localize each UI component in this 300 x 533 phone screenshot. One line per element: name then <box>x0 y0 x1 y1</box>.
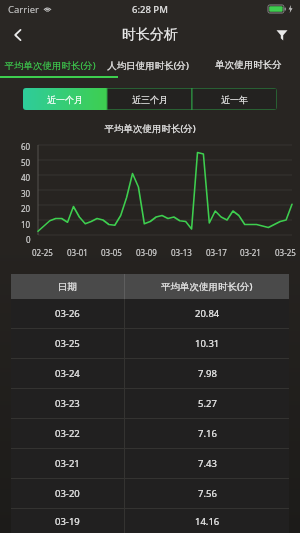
staticText: 03-21 <box>55 457 80 470</box>
staticText: 03-25 <box>55 337 80 350</box>
staticText: 平均单次使用时长(分) <box>161 280 253 293</box>
button[interactable]: 03-25 <box>11 329 289 358</box>
staticText: 03-20 <box>55 487 80 500</box>
staticText: 03-19 <box>55 515 80 528</box>
staticText: 7.43 <box>198 457 217 470</box>
button[interactable]: 03-20 <box>11 479 289 508</box>
staticText: 人均日使用时长(分) <box>107 59 189 72</box>
staticText: 近一个月 <box>47 94 83 105</box>
button[interactable]: 03-19 <box>11 509 289 533</box>
staticText: 30 <box>21 188 31 199</box>
staticText: 0 <box>26 234 31 245</box>
button[interactable]: Back <box>0 18 36 52</box>
button[interactable]: 03-22 <box>11 419 289 448</box>
staticText: 03-21 <box>240 247 261 258</box>
button[interactable]: 03-21 <box>11 449 289 478</box>
staticText: 03-25 <box>275 247 296 258</box>
staticText: 7.98 <box>198 367 217 380</box>
staticText: 近一年 <box>221 94 248 105</box>
button[interactable]: 平均单次使用时长(分) <box>0 52 99 78</box>
button[interactable]: Filter <box>264 18 300 52</box>
staticText: 03-23 <box>55 397 80 410</box>
staticText: 03-26 <box>55 307 80 320</box>
staticText: 10 <box>21 219 31 230</box>
button[interactable]: 近三个月 <box>107 88 192 110</box>
staticText: 50 <box>21 157 31 168</box>
staticText: 02-25 <box>32 247 53 258</box>
staticText: 14.16 <box>195 515 220 528</box>
staticText: 平均单次使用时长(分) <box>0 122 300 135</box>
staticText: 5.27 <box>198 397 217 410</box>
button[interactable]: 单次使用时长分 <box>197 52 300 78</box>
staticText: 近三个月 <box>132 94 168 105</box>
button[interactable]: 近一年 <box>192 88 277 110</box>
staticText: 7.16 <box>198 427 217 440</box>
staticText: 03-22 <box>55 427 80 440</box>
button[interactable]: 03-24 <box>11 359 289 388</box>
staticText: 20 <box>21 203 31 214</box>
button[interactable]: 03-23 <box>11 389 289 418</box>
button[interactable]: 03-26 <box>11 299 289 328</box>
staticText: 20.84 <box>195 307 220 320</box>
staticText: 03-01 <box>67 247 88 258</box>
staticText: 03-09 <box>136 247 157 258</box>
staticText: 60 <box>21 141 31 152</box>
button[interactable]: 人均日使用时长(分) <box>99 52 197 78</box>
staticText: 40 <box>21 172 31 183</box>
staticText: Carrier <box>8 3 39 16</box>
staticText: 平均单次使用时长(分) <box>4 59 96 72</box>
staticText: 7.56 <box>198 487 217 500</box>
staticText: 单次使用时长分 <box>215 59 282 71</box>
staticText: 10.31 <box>195 337 220 350</box>
staticText: 日期 <box>58 281 77 293</box>
staticText: 6:28 PM <box>132 3 168 16</box>
staticText: 时长分析 <box>122 26 178 44</box>
staticText: 03-17 <box>206 247 227 258</box>
staticText: 03-05 <box>101 247 122 258</box>
button[interactable]: 近一个月 <box>23 88 107 110</box>
staticText: 03-24 <box>55 367 80 380</box>
staticText: 03-13 <box>171 247 192 258</box>
